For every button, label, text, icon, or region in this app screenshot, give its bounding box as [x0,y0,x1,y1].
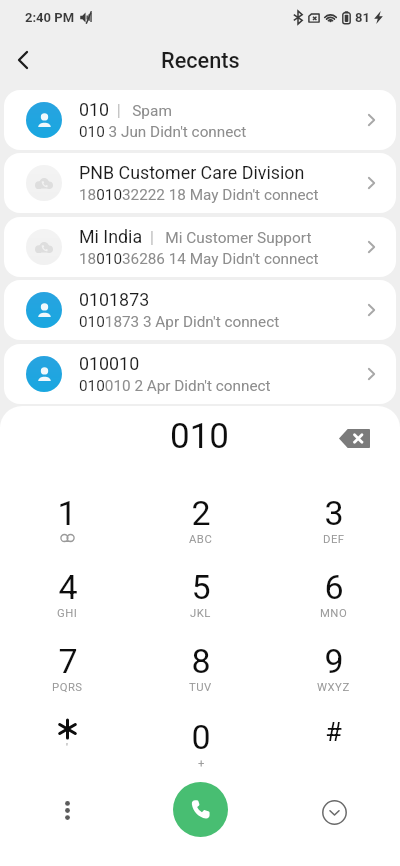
staticText: ' [66,741,69,754]
staticText: 010010 [79,353,140,374]
button[interactable]: 1 [0,476,134,548]
button[interactable]: 010010 [4,344,396,404]
staticText: 7 [58,641,78,681]
staticText: 9 [324,641,344,681]
staticText: 0101873 3 Apr Didn't connect [79,313,280,331]
staticText: 010 | Spam [79,99,172,120]
button[interactable]: More options [44,787,90,833]
staticText: 8 [191,641,211,681]
button[interactable]: Mi India | Mi Customer Support [4,217,396,277]
staticText: 1801032222 18 May Didn't connect [79,186,319,204]
button[interactable]: Backspace [331,415,377,461]
button[interactable]: 6 [267,550,400,622]
staticText: 6 [324,567,344,607]
button[interactable]: Call [173,782,228,837]
staticText: 010010 2 Apr Didn't connect [79,377,271,395]
staticText: 3 [324,493,344,533]
staticText: DEF [323,533,345,546]
button[interactable]: Hide keypad [311,787,357,833]
staticText: 4 [58,567,78,607]
staticText: PNB Customer Care Division [79,162,305,183]
staticText: 1 [57,493,77,533]
staticText: PQRS [52,681,83,694]
staticText: JKL [190,607,211,620]
button[interactable]: 0101873 [4,280,396,340]
button[interactable]: 4 [0,550,134,622]
button[interactable]: 5 [134,550,267,622]
staticText: TUV [189,681,212,694]
staticText: Mi India | Mi Customer Support [79,226,312,247]
staticText: WXYZ [317,681,350,694]
button[interactable]: ' [0,700,134,772]
staticText: 010 [170,416,230,457]
staticText: 5 [191,567,211,607]
staticText: MNO [320,607,348,620]
button[interactable]: 8 [134,624,267,696]
button[interactable]: 2 [134,476,267,548]
staticText: 010 3 Jun Didn't connect [79,123,247,141]
staticText: # [325,717,342,741]
staticText: + [198,757,205,770]
staticText: 0 [191,717,211,757]
button[interactable]: 7 [0,624,134,696]
button[interactable]: 3 [267,476,400,548]
staticText: GHI [57,607,78,620]
button[interactable]: PNB Customer Care Division [4,153,396,213]
button[interactable]: 0 [134,700,267,772]
button[interactable]: Back [0,37,46,83]
staticText: Recents [161,48,240,73]
staticText: 81 [355,10,370,25]
button[interactable]: 9 [267,624,400,696]
staticText: 2 [191,493,211,533]
button[interactable]: 010 | Spam [4,90,396,150]
staticText: 0101873 [79,289,150,310]
staticText: 1801036286 14 May Didn't connect [79,250,319,268]
button[interactable]: # [267,700,400,772]
staticText: ABC [189,533,213,546]
staticText: 2:40 PM [25,10,75,25]
